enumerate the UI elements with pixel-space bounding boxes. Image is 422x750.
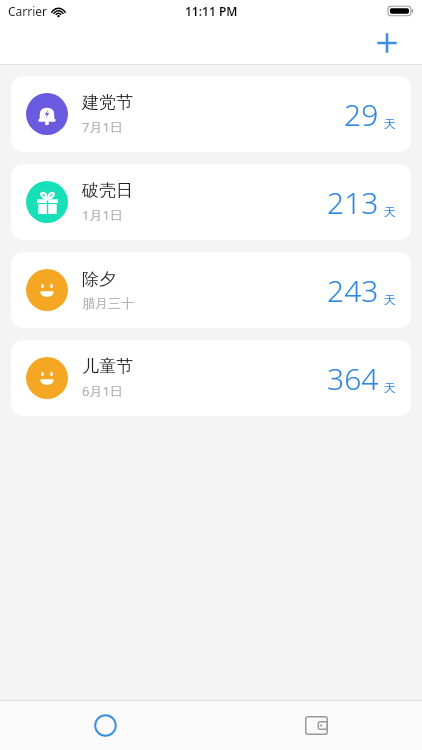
button[interactable]: 除夕	[11, 252, 411, 328]
staticText: 天	[384, 116, 396, 131]
staticText: 1月1日	[82, 206, 123, 224]
button[interactable]: 建党节	[11, 76, 411, 152]
staticText: 364	[327, 358, 379, 399]
staticText: 213	[327, 182, 379, 223]
staticText: 7月1日	[82, 118, 123, 136]
staticText: 243	[327, 270, 379, 311]
staticText: 6月1日	[82, 382, 123, 400]
button[interactable]: Countdowns	[0, 701, 211, 750]
staticText: 儿童节	[82, 356, 133, 377]
staticText: 11:11 PM	[185, 3, 238, 19]
button[interactable]: Wallet	[211, 701, 422, 750]
staticText: 破壳日	[82, 180, 133, 201]
button[interactable]: Add countdown	[370, 26, 404, 60]
staticText: 天	[384, 380, 396, 395]
staticText: 天	[384, 292, 396, 307]
staticText: Carrier	[8, 3, 48, 19]
staticText: 腊月三十	[82, 295, 134, 311]
button[interactable]: 儿童节	[11, 340, 411, 416]
staticText: 除夕	[82, 269, 116, 290]
staticText: 29	[344, 94, 379, 135]
button[interactable]: 破壳日	[11, 164, 411, 240]
staticText: 天	[384, 204, 396, 219]
staticText: 建党节	[82, 92, 133, 113]
